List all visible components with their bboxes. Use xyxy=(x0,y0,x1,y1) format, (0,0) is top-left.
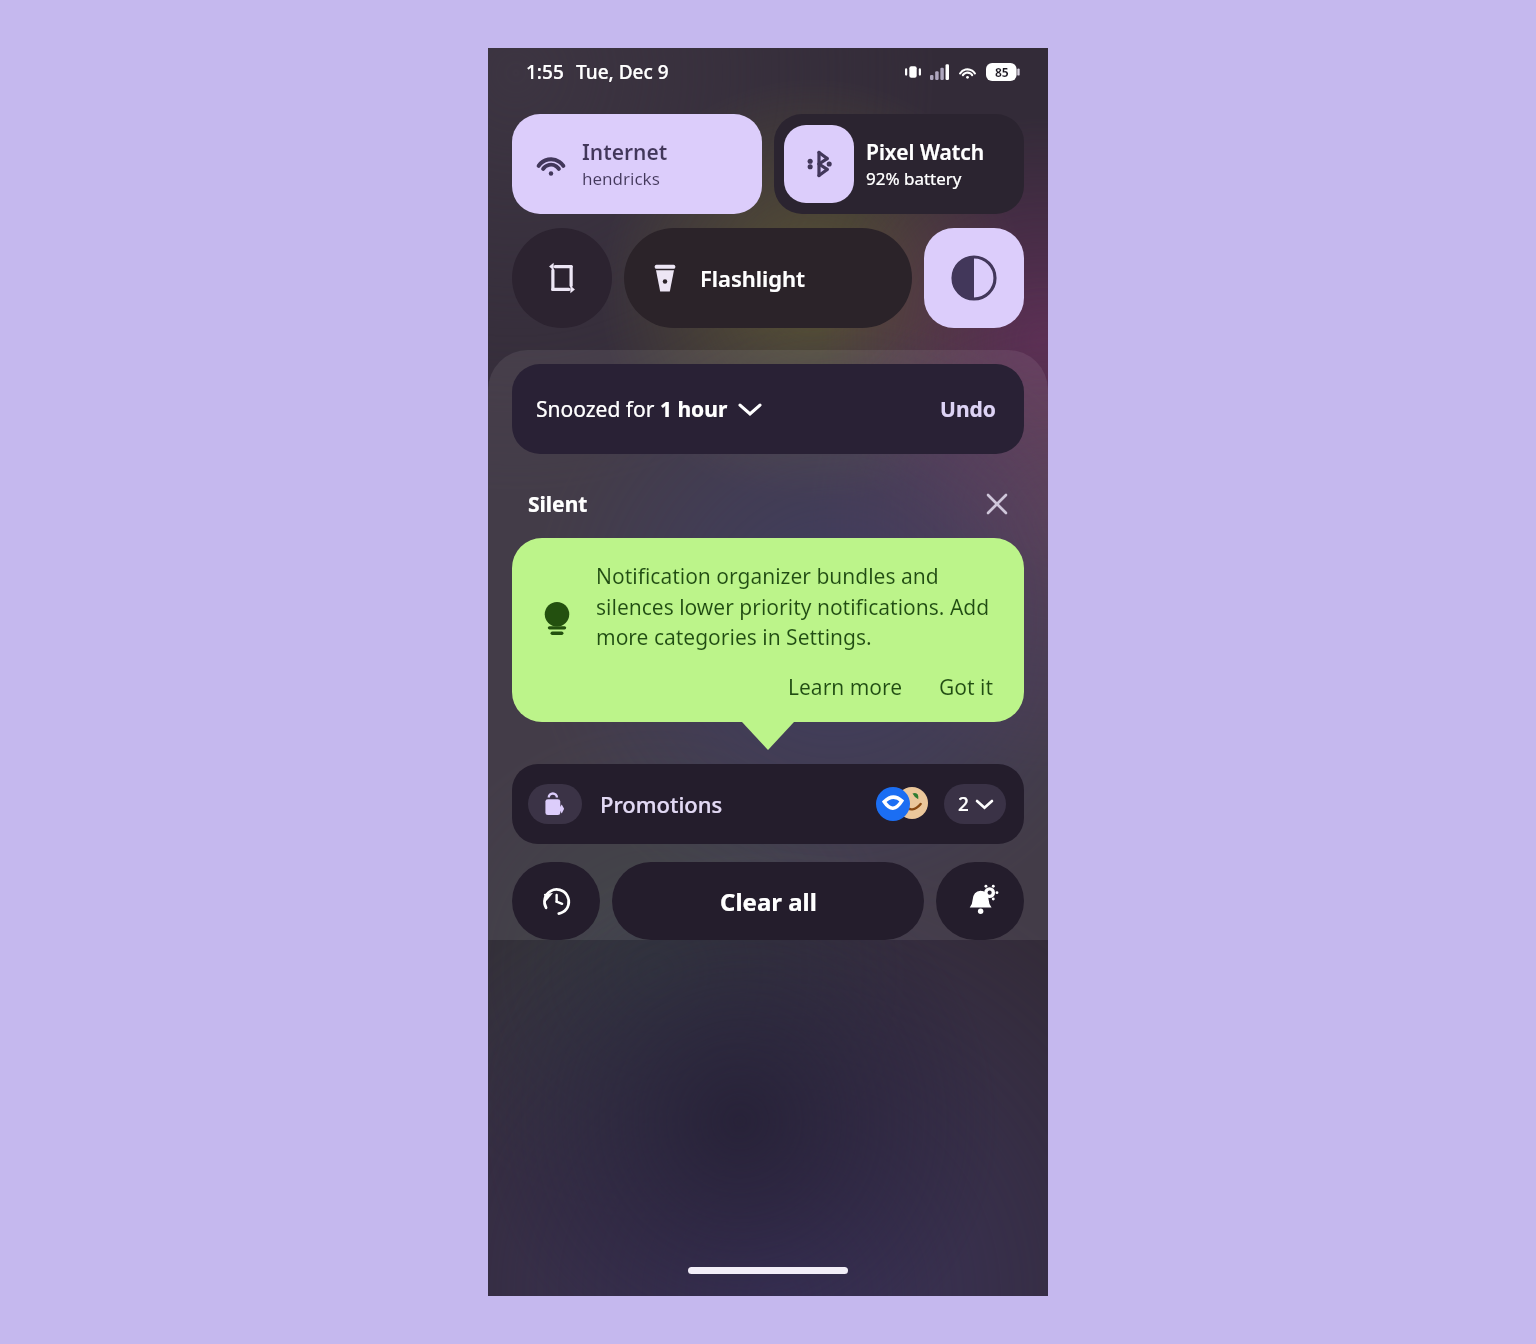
button[interactable]: Auto-rotate xyxy=(512,228,612,328)
staticText: Got it xyxy=(939,673,994,702)
staticText: hendricks xyxy=(582,167,660,190)
button[interactable]: Undo xyxy=(936,391,1000,428)
button[interactable]: Snoozed for xyxy=(512,364,1024,454)
staticText: Silent xyxy=(528,490,588,519)
button[interactable]: 2 xyxy=(944,784,1006,824)
staticText: Internet xyxy=(582,138,668,167)
button[interactable]: Dismiss xyxy=(980,487,1014,521)
staticText: Learn more xyxy=(788,673,903,702)
staticText: 1 hour xyxy=(660,395,728,424)
button[interactable]: Promotions xyxy=(512,764,1024,844)
staticText: Undo xyxy=(940,395,996,424)
button[interactable]: Got it xyxy=(933,667,1000,708)
staticText: 1:55 xyxy=(526,59,564,85)
staticText: 2 xyxy=(958,791,969,817)
staticText: Notification organizer bundles and silen… xyxy=(596,562,1000,651)
staticText: Pixel Watch xyxy=(866,138,985,167)
button[interactable]: Dark theme xyxy=(924,228,1024,328)
staticText: Tue, Dec 9 xyxy=(576,59,669,85)
button[interactable]: Internet xyxy=(512,114,762,214)
button[interactable]: Learn more xyxy=(782,667,909,708)
button[interactable]: Pixel Watch xyxy=(774,114,1024,214)
button[interactable]: Flashlight xyxy=(624,228,912,328)
staticText: 92% battery xyxy=(866,167,962,190)
button[interactable]: Notification settings xyxy=(936,862,1024,940)
staticText: Flashlight xyxy=(700,263,806,293)
button[interactable]: Notification history xyxy=(512,862,600,940)
staticText: Clear all xyxy=(720,885,817,918)
staticText: 85 xyxy=(995,64,1009,80)
button[interactable]: Clear all xyxy=(612,862,924,940)
staticText: Snoozed for xyxy=(536,395,660,424)
staticText: Promotions xyxy=(600,789,723,819)
